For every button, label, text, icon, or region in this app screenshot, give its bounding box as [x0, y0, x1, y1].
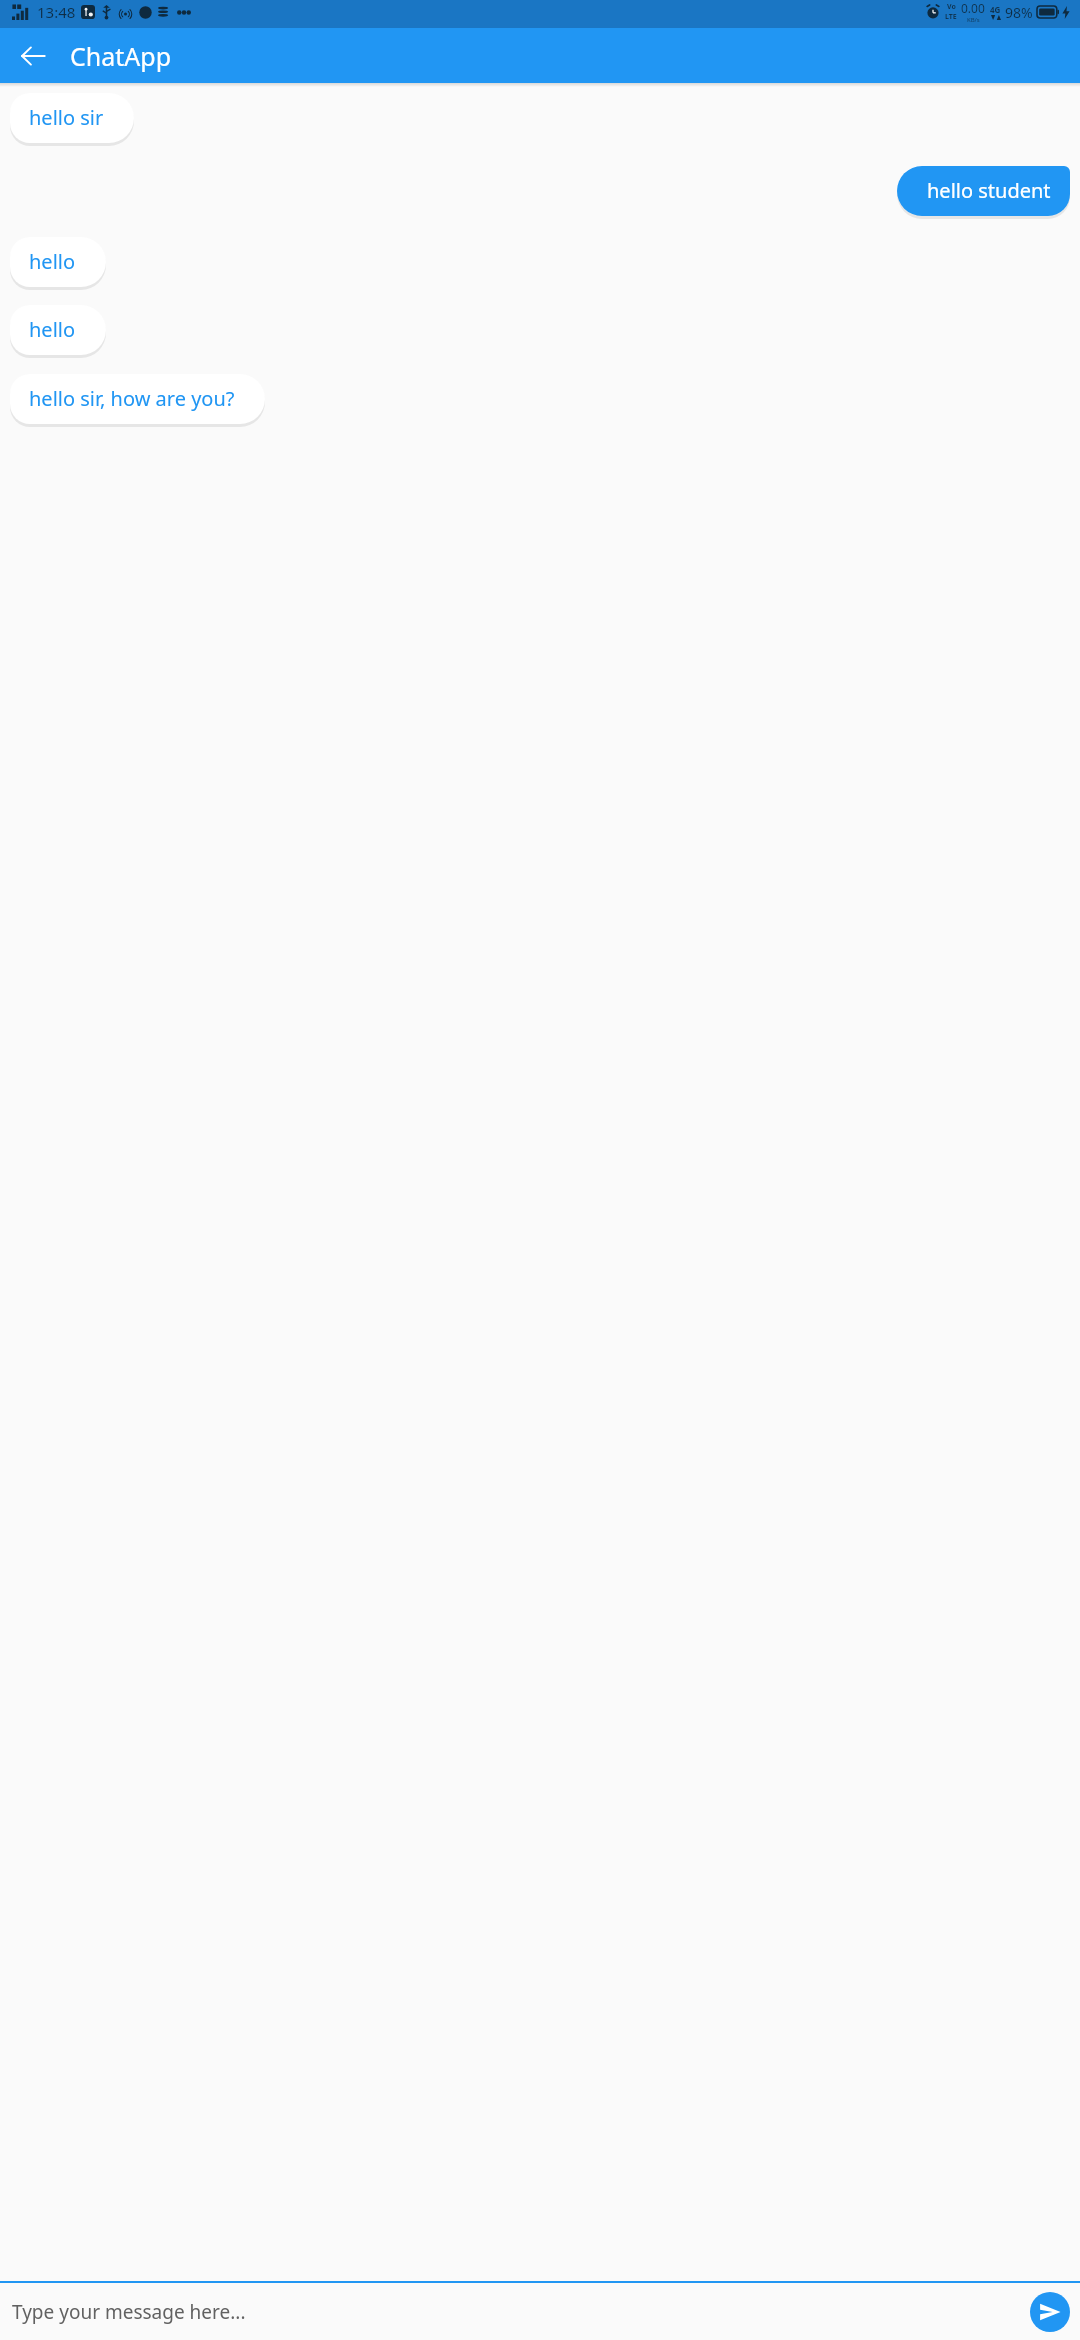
staticText: Type your message here...	[12, 2299, 246, 2325]
staticText: 0.00	[961, 0, 985, 16]
staticText: KB/s	[967, 16, 980, 24]
button[interactable]: Type your message here...	[0, 2283, 1030, 2340]
staticText: hello student	[927, 177, 1051, 204]
staticText: LTE	[945, 12, 957, 22]
button[interactable]: hello sir, how are you?	[10, 374, 265, 424]
button[interactable]: Back	[10, 33, 56, 79]
button[interactable]: hello	[10, 237, 106, 287]
staticText: hello	[29, 248, 76, 275]
button[interactable]: Send	[1030, 2292, 1070, 2332]
staticText: hello	[29, 316, 76, 343]
button[interactable]: hello sir	[10, 93, 134, 143]
staticText: 13:48	[37, 2, 76, 22]
staticText: 98%	[1005, 3, 1033, 22]
staticText: Vo	[947, 2, 956, 12]
staticText: 4G	[990, 4, 1001, 15]
staticText: hello sir, how are you?	[29, 385, 235, 412]
button[interactable]: hello	[10, 305, 106, 355]
staticText: hello sir	[29, 104, 104, 131]
button[interactable]: hello student	[897, 166, 1070, 216]
staticText: ChatApp	[70, 39, 172, 73]
